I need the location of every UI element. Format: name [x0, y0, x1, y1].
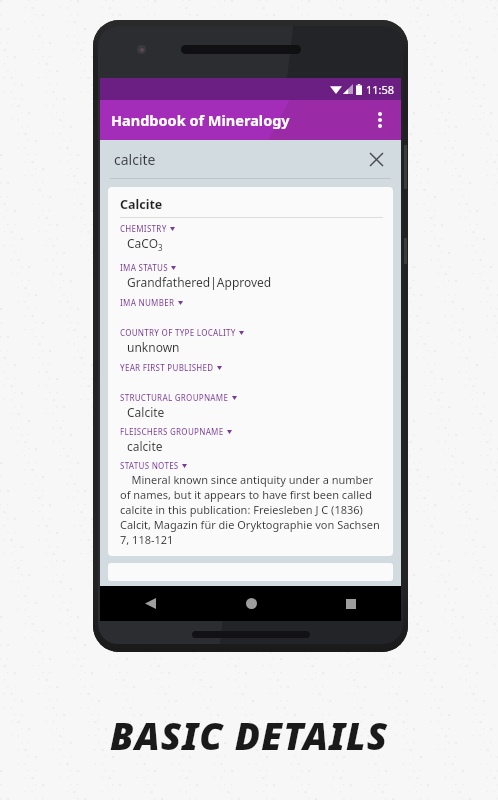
staticText: IMA NUMBER — [120, 297, 175, 308]
staticText: Mineral known since antiquity under a nu… — [120, 472, 383, 547]
button[interactable]: More options — [363, 103, 397, 137]
staticText: calcite — [127, 438, 163, 454]
staticText: STRUCTURAL GROUPNAME — [120, 392, 229, 403]
staticText: Calcite — [127, 404, 165, 420]
staticText: IMA STATUS — [120, 262, 168, 273]
staticText: CaCO3 — [127, 235, 163, 253]
button[interactable]: Recents — [301, 586, 401, 621]
button[interactable]: Back — [100, 586, 201, 621]
staticText: BASIC DETAILS — [110, 710, 389, 760]
button[interactable]: Home — [201, 586, 301, 621]
staticText: calcite — [114, 150, 156, 169]
staticText: COUNTRY OF TYPE LOCALITY — [120, 327, 236, 338]
staticText: Grandfathered|Approved — [127, 274, 272, 290]
staticText: STATUS NOTES — [120, 460, 179, 471]
staticText: FLEISCHERS GROUPNAME — [120, 426, 224, 437]
staticText: Handbook of Mineralogy — [111, 110, 290, 130]
staticText: YEAR FIRST PUBLISHED — [120, 362, 214, 373]
staticText: 11:58 — [366, 82, 395, 97]
button[interactable]: calcite — [100, 140, 401, 178]
button[interactable]: Clear search — [363, 146, 389, 172]
staticText: Calcite — [120, 196, 163, 213]
staticText: unknown — [127, 339, 180, 355]
staticText: CHEMISTRY — [120, 223, 167, 234]
button[interactable]: Calcite — [108, 187, 393, 556]
